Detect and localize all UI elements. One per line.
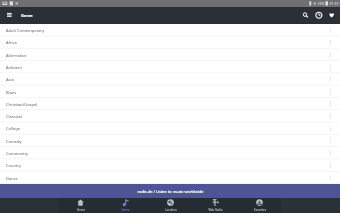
- staticText: Alternative: [6, 53, 27, 58]
- button[interactable]: radio.de / Listen to music worldwide: [0, 184, 340, 198]
- button[interactable]: More options for Blues: [322, 86, 340, 98]
- button[interactable]: More options for Country: [322, 159, 340, 171]
- button[interactable]: More options for Asia: [322, 73, 340, 85]
- button[interactable]: More options for College: [322, 122, 340, 134]
- staticText: Dance: [6, 176, 18, 181]
- button[interactable]: More options for Africa: [322, 36, 340, 48]
- button[interactable]: Classical: [0, 110, 340, 122]
- staticText: Adult Contemporary: [6, 28, 45, 33]
- staticText: Home: [77, 208, 85, 212]
- staticText: Africa: [6, 40, 17, 45]
- staticText: Location: [165, 208, 177, 212]
- button[interactable]: Community: [0, 147, 340, 159]
- button[interactable]: More options for Christian/Gospel: [322, 98, 340, 110]
- button[interactable]: Adult Contemporary: [0, 24, 340, 36]
- button[interactable]: Asia: [0, 73, 340, 85]
- button[interactable]: Favorites: [325, 7, 340, 24]
- button[interactable]: Alternative: [0, 49, 340, 61]
- button[interactable]: Ambient: [0, 61, 340, 73]
- button[interactable]: Comedy: [0, 135, 340, 147]
- button[interactable]: Location: [148, 198, 193, 213]
- button[interactable]: Open navigation drawer: [0, 7, 16, 24]
- staticText: College: [6, 126, 20, 131]
- staticText: Web Radio: [208, 208, 223, 212]
- button[interactable]: More options for Adult Contemporary: [322, 24, 340, 36]
- staticText: Genre: [21, 13, 33, 18]
- button[interactable]: More options for Dance: [322, 172, 340, 184]
- staticText: Blues: [6, 90, 17, 95]
- button[interactable]: Dance: [0, 172, 340, 184]
- button[interactable]: Search: [299, 7, 312, 24]
- staticText: Favorites: [254, 208, 266, 212]
- button[interactable]: More options for Ambient: [322, 61, 340, 73]
- staticText: Genre: [121, 208, 130, 212]
- button[interactable]: More options for Community: [322, 147, 340, 159]
- staticText: Asia: [6, 77, 14, 82]
- button[interactable]: Genre: [103, 198, 148, 213]
- staticText: Country: [6, 163, 22, 168]
- staticText: Classical: [6, 114, 22, 119]
- button[interactable]: Country: [0, 159, 340, 171]
- button[interactable]: Africa: [0, 36, 340, 48]
- staticText: Comedy: [6, 139, 22, 144]
- staticText: Ambient: [6, 65, 22, 70]
- button[interactable]: More options for Classical: [322, 110, 340, 122]
- button[interactable]: Web Radio: [193, 198, 238, 213]
- button[interactable]: More options for Comedy: [322, 135, 340, 147]
- staticText: radio.de / Listen to music worldwide: [137, 189, 204, 194]
- staticText: Christian/Gospel: [6, 102, 38, 107]
- button[interactable]: Christian/Gospel: [0, 98, 340, 110]
- button[interactable]: Blues: [0, 86, 340, 98]
- button[interactable]: Favorites: [238, 198, 281, 213]
- button[interactable]: College: [0, 122, 340, 134]
- button[interactable]: Home: [58, 198, 103, 213]
- button[interactable]: Recently played: [312, 7, 325, 24]
- staticText: Community: [6, 151, 28, 156]
- button[interactable]: More options for Alternative: [322, 49, 340, 61]
